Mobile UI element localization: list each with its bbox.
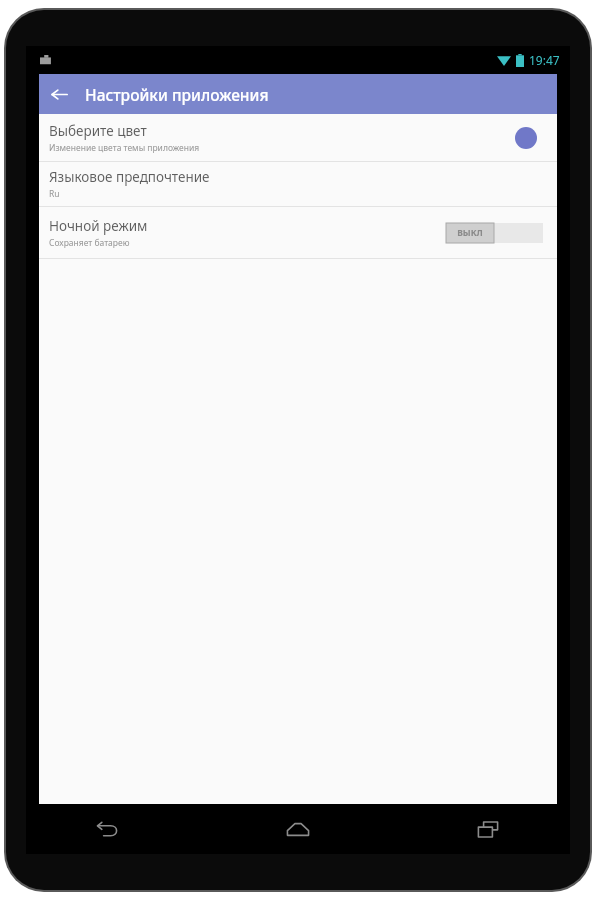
staticText: Ru bbox=[49, 188, 60, 200]
button[interactable]: Ночной режим bbox=[39, 207, 557, 258]
staticText: Выберите цвет bbox=[49, 122, 147, 140]
staticText: Настройки приложения bbox=[85, 84, 269, 105]
staticText: Изменение цвета темы приложения bbox=[49, 142, 200, 154]
button[interactable]: Языковое предпочтение bbox=[39, 162, 557, 206]
staticText: 19:47 bbox=[529, 52, 560, 68]
staticText: Сохраняет батарею bbox=[49, 237, 130, 249]
button[interactable]: Выберите цвет bbox=[39, 114, 557, 161]
staticText: Ночной режим bbox=[49, 217, 148, 235]
button[interactable]: Back bbox=[39, 74, 79, 114]
staticText: Языковое предпочтение bbox=[49, 168, 210, 186]
button[interactable]: Night mode, off bbox=[446, 223, 543, 243]
button[interactable]: Home bbox=[276, 807, 320, 851]
staticText: ВЫКЛ bbox=[457, 227, 483, 239]
button[interactable]: Recent apps bbox=[466, 807, 510, 851]
button[interactable]: Back bbox=[86, 807, 130, 851]
